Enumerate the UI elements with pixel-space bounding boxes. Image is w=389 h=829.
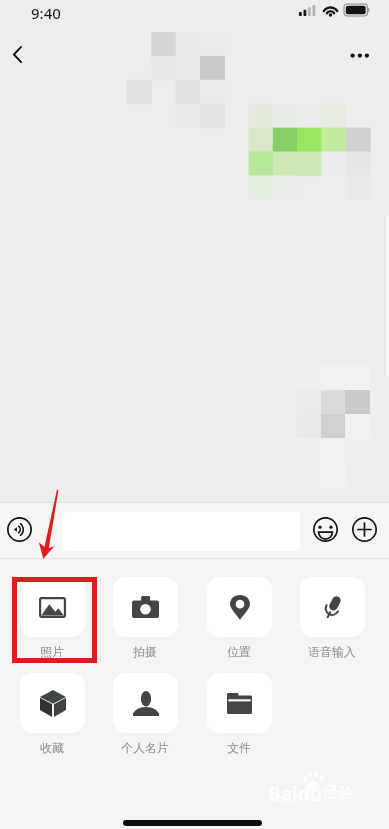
staticText: 位置 — [227, 645, 251, 659]
staticText: 个人名片 — [121, 741, 169, 755]
staticText: 收藏 — [40, 741, 64, 755]
button[interactable]: 位置 — [199, 575, 279, 659]
button[interactable]: More functions — [350, 515, 379, 544]
button[interactable]: 个人名片 — [105, 671, 185, 755]
button[interactable]: Voice message — [5, 515, 34, 544]
staticText: 拍摄 — [133, 645, 157, 659]
staticText: 经验 — [323, 784, 353, 803]
staticText: 9:40 — [31, 3, 61, 23]
staticText: Baidu — [268, 781, 323, 807]
staticText: 照片 — [40, 645, 64, 659]
staticText: 文件 — [227, 741, 251, 755]
button[interactable]: 文件 — [199, 671, 279, 755]
button[interactable]: 收藏 — [12, 671, 92, 755]
button[interactable]: 拍摄 — [105, 575, 185, 659]
button[interactable]: 语音输入 — [292, 575, 372, 659]
staticText: 语音输入 — [308, 645, 356, 659]
button[interactable]: 照片 — [12, 575, 92, 659]
button[interactable]: Emoji — [311, 515, 340, 544]
button[interactable]: More options — [344, 33, 380, 77]
button[interactable]: Back — [0, 33, 36, 77]
